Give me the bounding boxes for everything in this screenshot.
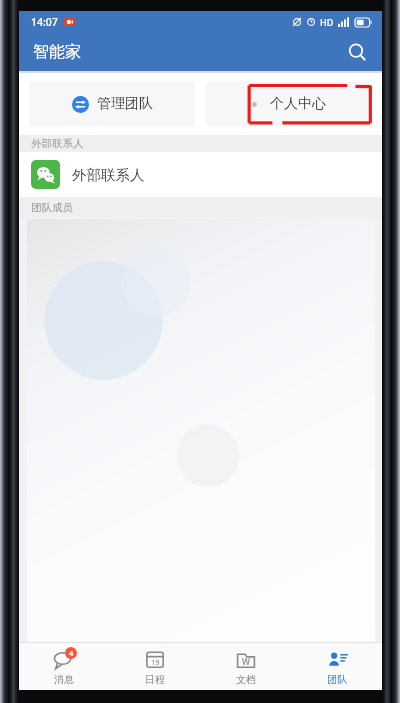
button[interactable]: 4 xyxy=(19,643,109,690)
staticText: 消息 xyxy=(54,673,74,686)
staticText: 14:07 xyxy=(31,15,58,29)
staticText: 管理团队 xyxy=(97,95,153,113)
button[interactable]: 管理团队 xyxy=(29,82,195,126)
staticText: 个人中心 xyxy=(270,95,326,113)
staticText: 外部联系人 xyxy=(31,137,84,150)
button[interactable]: W xyxy=(200,643,291,690)
button[interactable]: 团队 xyxy=(291,643,382,690)
staticText: 文档 xyxy=(236,673,256,686)
staticText: 智能家 xyxy=(33,42,81,62)
staticText: 外部联系人 xyxy=(72,166,145,184)
button[interactable]: 19 xyxy=(109,643,200,690)
button[interactable]: 个人中心 xyxy=(206,82,372,126)
staticText: HD xyxy=(320,16,334,28)
button[interactable]: 搜索 xyxy=(338,33,376,71)
button[interactable]: 外部联系人 xyxy=(31,152,382,197)
staticText: 4 xyxy=(69,648,74,658)
staticText: 团队成员 xyxy=(31,201,73,214)
staticText: 团队 xyxy=(327,673,347,686)
staticText: 19 xyxy=(151,658,160,668)
staticText: W xyxy=(242,656,250,668)
staticText: 日程 xyxy=(145,673,165,686)
